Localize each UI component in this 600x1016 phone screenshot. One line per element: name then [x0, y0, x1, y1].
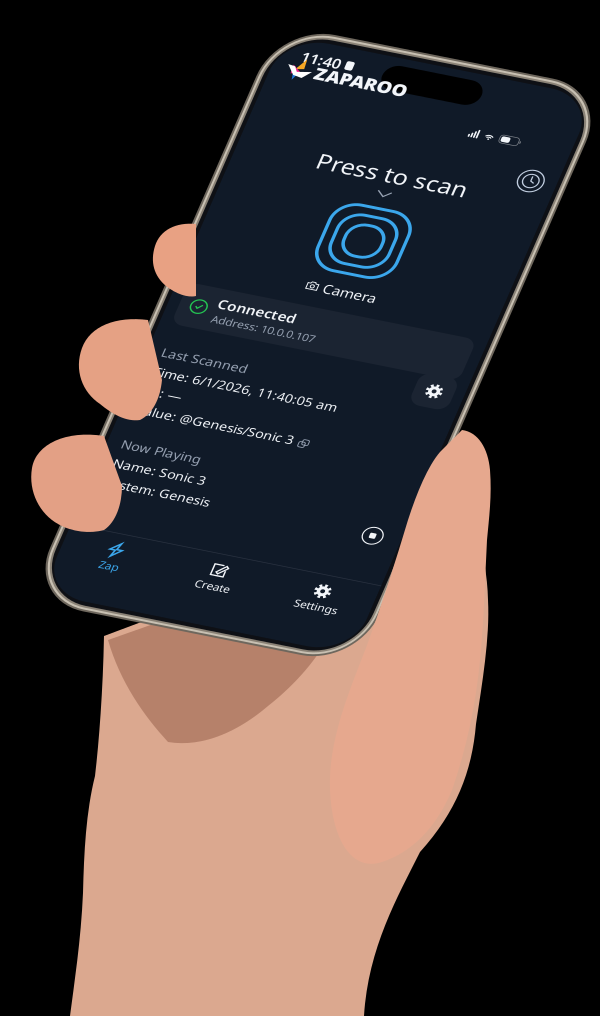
staticText: System: Genesis [18, 666, 151, 689]
staticText: Time: 6/1/2026, 11:40:05 am [18, 497, 251, 520]
button[interactable]: Stop playing [337, 658, 378, 699]
staticText: Now Playing [18, 608, 119, 631]
staticText: Address: 10.0.0.107 [59, 409, 190, 428]
button[interactable]: Connected [14, 374, 379, 437]
staticText: Name: Sonic 3 [18, 637, 135, 660]
staticText: Press to scan [101, 146, 291, 187]
staticText: Camera [173, 332, 240, 357]
button[interactable]: Settings [262, 758, 393, 805]
staticText: Connected [59, 383, 158, 408]
button[interactable]: Camera [0, 328, 393, 361]
staticText: Last Scanned [18, 468, 127, 491]
button[interactable]: Zap [0, 757, 131, 806]
staticText: Value: @Genesis/Sonic 3 [18, 555, 217, 578]
staticText: Settings [300, 784, 355, 803]
button[interactable]: Press to scan [0, 146, 393, 317]
staticText: ID: — [18, 526, 64, 549]
